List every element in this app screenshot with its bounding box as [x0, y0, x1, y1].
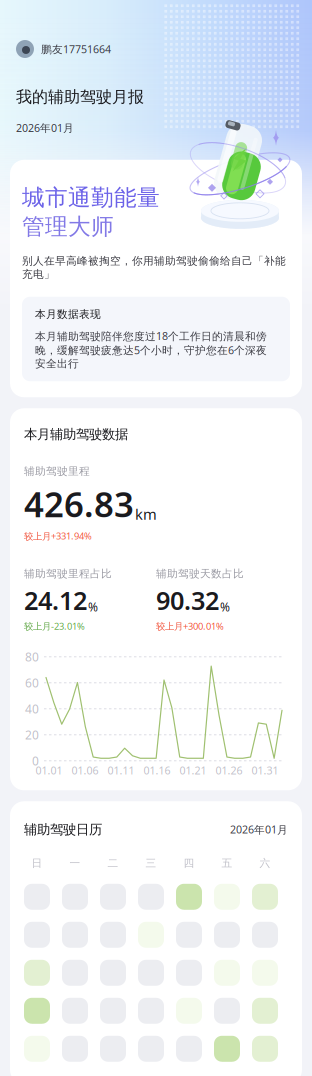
staticText: 管理大师 [22, 213, 114, 240]
staticText: 四 [183, 857, 194, 870]
staticText: % [220, 599, 230, 615]
staticText: 2026年01月 [16, 121, 74, 135]
staticText: 80 [25, 649, 39, 665]
staticText: 本月数据表现 [35, 308, 101, 321]
staticText: 01.16 [143, 763, 170, 777]
staticText: 01.06 [71, 763, 98, 777]
staticText: 01.01 [35, 763, 62, 777]
staticText: 日 [31, 857, 42, 870]
staticText: 一 [69, 857, 80, 870]
staticText: 辅助驾驶里程 [24, 465, 90, 478]
staticText: 01.31 [251, 763, 278, 777]
staticText: 426.83 [24, 481, 134, 527]
staticText: 别人在早高峰被掏空，你用辅助驾驶偷偷给自己「补能充电」 [22, 254, 286, 281]
staticText: km [135, 504, 157, 524]
staticText: 60 [25, 675, 39, 691]
staticText: 五 [221, 857, 232, 870]
staticText: 2026年01月 [230, 822, 288, 837]
staticText: 城市通勤能量 [22, 184, 160, 212]
staticText: 较上月+300.01% [156, 620, 224, 632]
staticText: 01.11 [107, 763, 134, 777]
staticText: 三 [145, 857, 156, 870]
staticText: 90.32 [156, 583, 219, 617]
staticText: 0 [32, 753, 39, 769]
staticText: 较上月+331.94% [24, 530, 92, 542]
staticText: 本月辅助驾驶陪伴您度过18个工作日的清晨和傍晚，缓解驾驶疲惫达5个小时，守护您在… [35, 329, 267, 370]
staticText: 20 [25, 727, 39, 743]
staticText: 辅助驾驶里程占比 [24, 567, 112, 580]
button[interactable]: 鹏友17751664 [0, 40, 111, 58]
staticText: 鹏友17751664 [41, 42, 111, 56]
staticText: 24.12 [24, 583, 87, 617]
staticText: 辅助驾驶天数占比 [156, 567, 244, 580]
staticText: 01.26 [215, 763, 242, 777]
staticText: 01.21 [179, 763, 206, 777]
staticText: % [88, 599, 98, 615]
staticText: 较上月-23.01% [24, 620, 85, 632]
staticText: 我的辅助驾驶月报 [16, 87, 144, 107]
staticText: 本月辅助驾驶数据 [24, 426, 128, 443]
staticText: 辅助驾驶日历 [24, 821, 102, 838]
staticText: 40 [25, 701, 39, 717]
staticText: 二 [107, 857, 118, 870]
staticText: 六 [259, 857, 270, 870]
